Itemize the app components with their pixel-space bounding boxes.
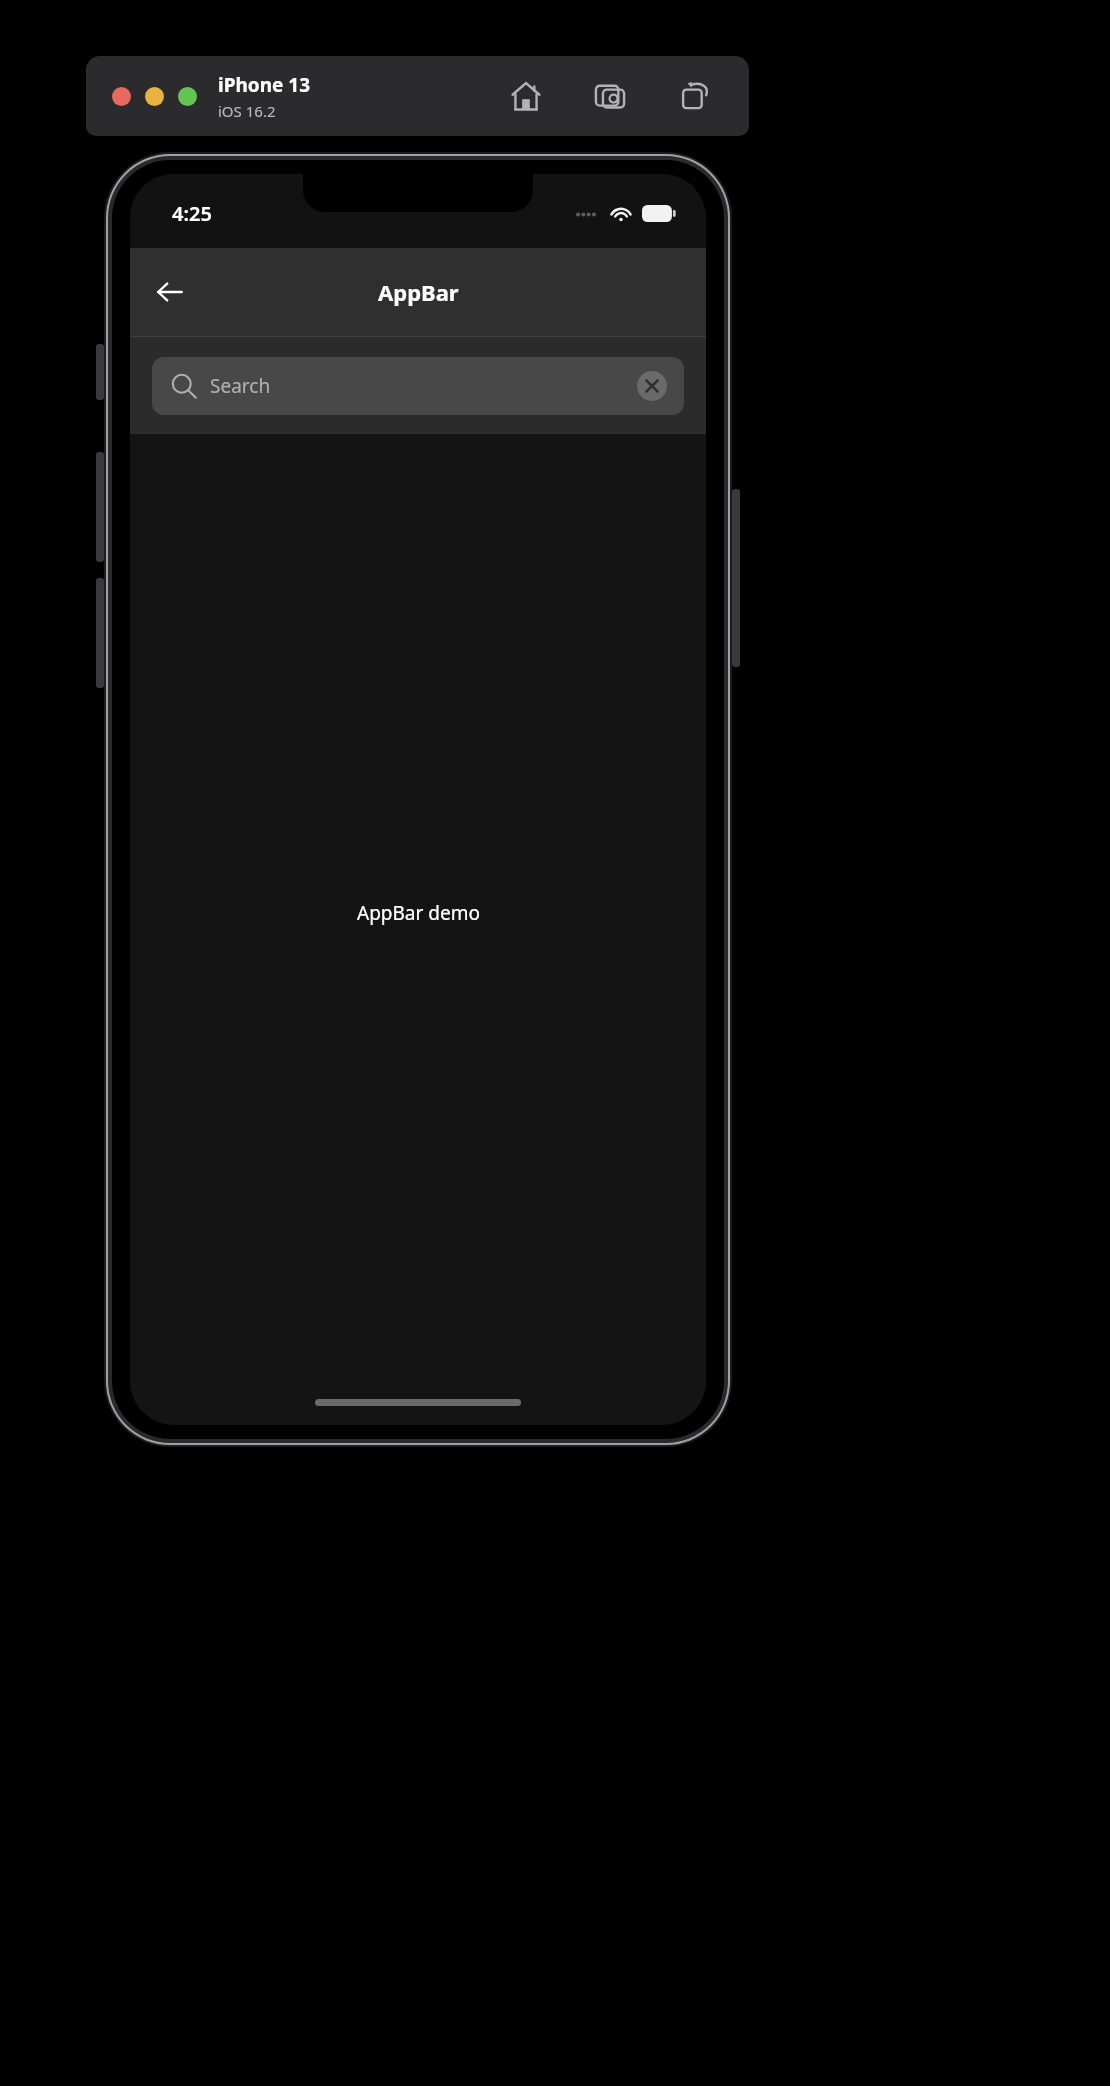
button[interactable]: Back [142,264,198,320]
staticText: Search [210,373,636,399]
button[interactable]: Close [112,87,131,106]
staticText: iPhone 13 [218,72,311,98]
button[interactable]: Search [152,357,684,415]
button[interactable]: Rotate [673,75,715,117]
button[interactable]: Home [505,75,547,117]
staticText: AppBar [378,277,459,307]
staticText: iOS 16.2 [218,101,276,121]
button[interactable]: Zoom [178,87,197,106]
button[interactable]: Clear search [636,370,668,402]
button[interactable]: Minimise [145,87,164,106]
button[interactable]: Screenshot [589,75,631,117]
staticText: AppBar demo [357,900,480,926]
staticText: 4:25 [172,200,212,227]
